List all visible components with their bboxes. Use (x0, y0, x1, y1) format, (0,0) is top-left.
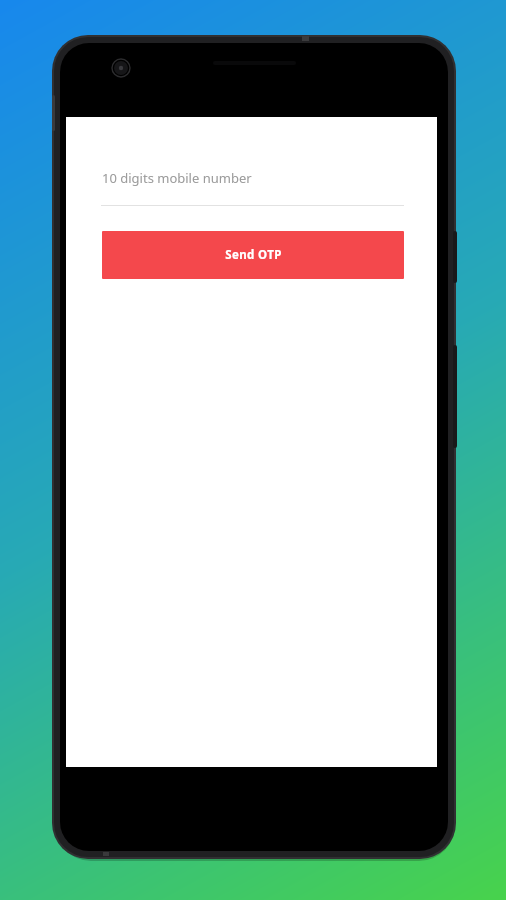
staticText: Send OTP (225, 247, 282, 263)
other: Volume (453, 345, 457, 448)
button[interactable]: 10 digits mobile number (102, 165, 402, 191)
button[interactable]: Send OTP (102, 231, 404, 279)
staticText: 10 digits mobile number (102, 169, 252, 187)
other: Power (453, 231, 457, 283)
